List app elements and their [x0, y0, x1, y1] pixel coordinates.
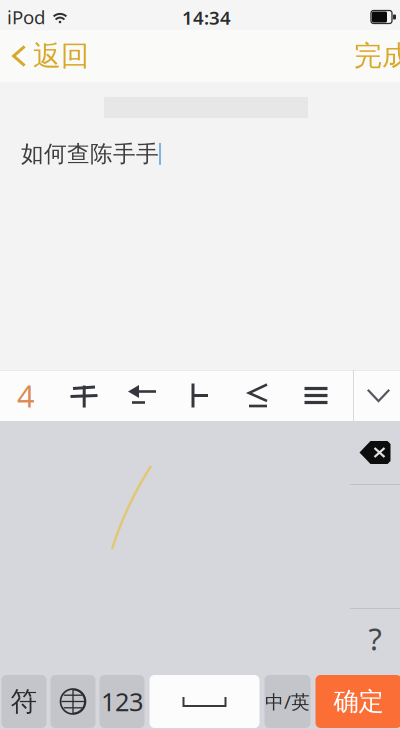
staticText: ?: [368, 618, 381, 659]
button[interactable]: Space: [149, 675, 259, 728]
staticText: 4: [17, 375, 35, 416]
button[interactable]: 确定: [315, 675, 400, 728]
button[interactable]: 符: [1, 675, 46, 728]
staticText: 确定: [333, 686, 383, 717]
button[interactable]: [229, 370, 287, 421]
staticText: 符: [10, 685, 37, 718]
button[interactable]: Help: [350, 609, 400, 668]
staticText: 如何查陈手手: [21, 140, 159, 168]
button[interactable]: 完成: [344, 33, 400, 79]
button[interactable]: 返回: [0, 33, 89, 79]
staticText: 123: [101, 685, 143, 718]
button[interactable]: Hide candidates: [354, 370, 400, 421]
staticText: 14:34: [182, 5, 231, 30]
staticText: 中/英: [265, 689, 310, 714]
button[interactable]: 123: [99, 675, 144, 728]
staticText: iPod: [7, 5, 45, 29]
staticText: 完成: [354, 39, 400, 73]
button[interactable]: Delete: [350, 421, 400, 484]
button[interactable]: 中/英: [264, 675, 310, 728]
button[interactable]: [113, 370, 171, 421]
button[interactable]: [171, 370, 229, 421]
button[interactable]: [55, 370, 113, 421]
button[interactable]: 4: [0, 370, 55, 421]
button[interactable]: [287, 370, 345, 421]
button[interactable]: Switch keyboard: [50, 675, 95, 728]
staticText: 返回: [33, 39, 89, 73]
